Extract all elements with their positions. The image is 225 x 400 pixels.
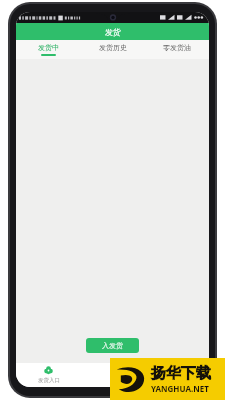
button[interactable]: 零发货油 [145,40,209,58]
button[interactable]: 发货中 [16,40,81,58]
button[interactable]: 入发货 [86,338,139,353]
staticText: 发货入口 [38,377,60,384]
staticText: 入发货 [102,341,123,350]
button[interactable]: 发货历史 [81,40,145,58]
staticText: 发货中 [38,43,59,52]
staticText: 扬华下载 [151,364,211,383]
staticText: 发货 [105,27,121,37]
button[interactable]: 发货入口 [16,363,81,387]
button[interactable]: Navigation item [81,363,145,387]
button[interactable]: Navigation item [145,363,209,387]
staticText: 零发货油 [163,43,191,52]
staticText: YANGHUA.NET [151,383,209,394]
staticText: 发货历史 [99,43,127,52]
